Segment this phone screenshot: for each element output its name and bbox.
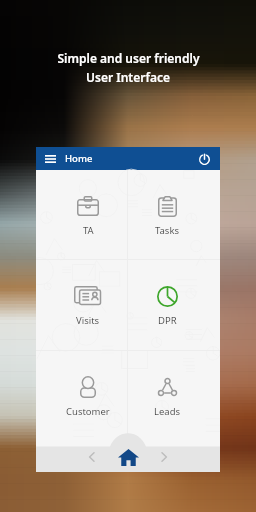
staticText: TA (83, 224, 94, 237)
staticText: Tasks (155, 224, 180, 237)
staticText: DPR (158, 314, 177, 327)
staticText: Home (65, 152, 93, 165)
staticText: Customer (66, 405, 110, 418)
staticText: Leads (154, 405, 181, 418)
staticText: Simple and user friendly (57, 50, 200, 66)
button[interactable]: TA (36, 170, 127, 259)
button[interactable]: DPR (128, 260, 220, 350)
button[interactable]: Leads (128, 351, 220, 441)
button[interactable]: Visits (36, 260, 127, 350)
button[interactable]: Customer (36, 351, 127, 441)
staticText: Visits (76, 314, 100, 327)
button[interactable]: Next (152, 445, 176, 469)
button[interactable]: Tasks (128, 170, 220, 259)
button[interactable]: Home (116, 445, 140, 469)
button[interactable]: Open navigation menu (42, 151, 58, 167)
button[interactable]: Previous (80, 445, 104, 469)
button[interactable]: Power / logout (195, 150, 213, 168)
staticText: User Interface (86, 69, 170, 85)
